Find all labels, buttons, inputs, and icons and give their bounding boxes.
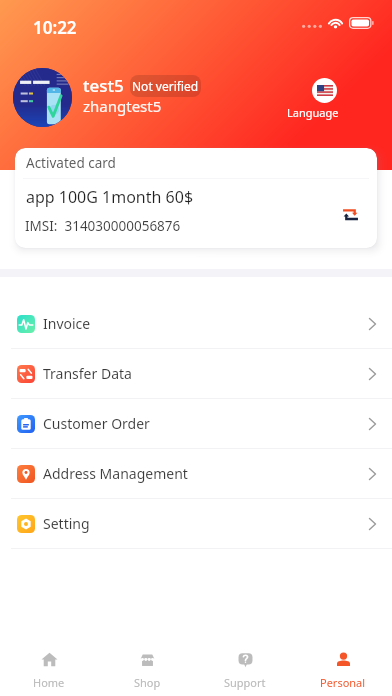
staticText: Transfer Data (43, 364, 132, 383)
staticText: Customer Order (43, 414, 150, 433)
staticText: Shop (134, 675, 161, 690)
staticText: Support (224, 675, 266, 690)
staticText: Personal (320, 675, 366, 690)
button[interactable]: Switch card (334, 198, 366, 230)
staticText: app 100G 1month 60$ (26, 186, 194, 208)
button[interactable]: Invoice (0, 299, 392, 349)
staticText: IMSI: 314030000056876 (25, 217, 181, 235)
button[interactable]: Shop (98, 646, 196, 696)
staticText: Not verified (132, 78, 199, 94)
button[interactable]: Activated card (15, 148, 377, 248)
staticText: Invoice (43, 314, 91, 333)
staticText: test5 (83, 74, 124, 97)
staticText: Setting (43, 514, 90, 533)
button[interactable]: Transfer Data (0, 349, 392, 399)
staticText: Activated card (26, 154, 116, 172)
staticText: Home (33, 675, 65, 690)
button[interactable]: Personal (294, 646, 392, 696)
staticText: Address Management (43, 464, 188, 483)
staticText: zhangtest5 (83, 96, 162, 116)
staticText: Language (287, 105, 339, 120)
button[interactable]: Home (0, 646, 98, 696)
button[interactable]: Language (286, 76, 338, 120)
button[interactable]: Setting (0, 499, 392, 549)
button[interactable]: Customer Order (0, 399, 392, 449)
button[interactable]: Support (196, 646, 294, 696)
staticText: 10:22 (33, 16, 77, 39)
button[interactable]: Address Management (0, 449, 392, 499)
